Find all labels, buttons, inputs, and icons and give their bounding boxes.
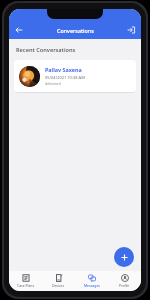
- staticText: Devices: [52, 283, 65, 288]
- staticText: delivered: [45, 81, 61, 86]
- staticText: Messages: [84, 283, 100, 288]
- button[interactable]: Messages: [75, 271, 108, 291]
- button[interactable]: Case Plans: [9, 271, 42, 291]
- staticText: 05/04/2021 10:38 AM: [45, 75, 85, 80]
- button[interactable]: Back: [12, 23, 26, 37]
- staticText: Profile: [119, 283, 130, 288]
- staticText: Conversations: [57, 27, 94, 34]
- staticText: Pallav Saxena: [45, 66, 82, 73]
- staticText: Case Plans: [17, 283, 35, 288]
- button[interactable]: New conversation: [114, 247, 134, 267]
- staticText: Recent Conversations: [16, 46, 76, 54]
- button[interactable]: Logout: [124, 23, 138, 37]
- button[interactable]: Profile: [108, 271, 141, 291]
- button[interactable]: Devices: [42, 271, 75, 291]
- button[interactable]: Pallav Saxena: [14, 60, 136, 92]
